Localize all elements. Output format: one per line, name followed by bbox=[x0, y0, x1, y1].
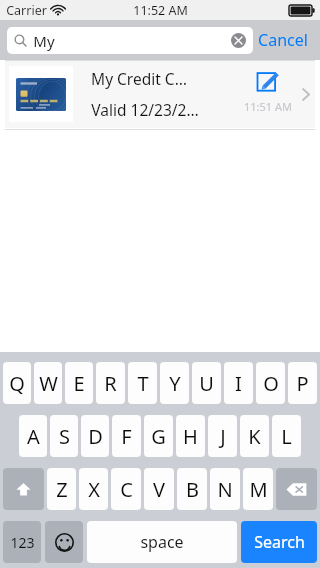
button[interactable]: My bbox=[7, 27, 253, 54]
button[interactable]: L bbox=[272, 415, 301, 457]
button[interactable]: A bbox=[19, 415, 47, 457]
staticText: Y bbox=[169, 370, 181, 397]
staticText: My Credit C… bbox=[91, 68, 187, 89]
button[interactable]: H bbox=[176, 415, 205, 457]
button[interactable]: I bbox=[224, 362, 253, 404]
button[interactable]: Q bbox=[3, 362, 31, 404]
button[interactable]: Edit bbox=[257, 70, 279, 92]
button[interactable]: Y bbox=[160, 362, 189, 404]
button[interactable]: G bbox=[144, 415, 173, 457]
staticText: B bbox=[186, 476, 199, 503]
button[interactable]: C bbox=[111, 468, 141, 510]
button[interactable]: R bbox=[96, 362, 125, 404]
button[interactable]: Cancel bbox=[253, 23, 313, 57]
staticText: 123 bbox=[10, 533, 35, 552]
staticText: A bbox=[27, 423, 40, 450]
button[interactable]: K bbox=[240, 415, 269, 457]
staticText: X bbox=[88, 476, 100, 503]
staticText: My bbox=[33, 31, 55, 51]
staticText: space bbox=[140, 531, 184, 553]
staticText: S bbox=[59, 423, 70, 450]
staticText: L bbox=[281, 423, 292, 450]
button[interactable]: W bbox=[34, 362, 62, 404]
staticText: Carrier bbox=[6, 2, 47, 19]
button[interactable]: M bbox=[243, 468, 273, 510]
button[interactable]: Z bbox=[47, 468, 76, 510]
button[interactable]: F bbox=[112, 415, 141, 457]
staticText: P bbox=[296, 370, 309, 397]
staticText: T bbox=[137, 370, 149, 397]
staticText: Q bbox=[9, 370, 25, 397]
staticText: N bbox=[217, 476, 233, 503]
staticText: R bbox=[104, 370, 117, 397]
staticText: K bbox=[248, 423, 261, 450]
staticText: V bbox=[153, 476, 165, 503]
button[interactable]: Search bbox=[241, 521, 317, 563]
staticText: 11:51 AM bbox=[244, 99, 292, 114]
button[interactable]: T bbox=[128, 362, 157, 404]
button[interactable]: V bbox=[144, 468, 174, 510]
button[interactable]: J bbox=[208, 415, 237, 457]
button[interactable]: B bbox=[177, 468, 207, 510]
button[interactable]: S bbox=[50, 415, 78, 457]
button[interactable]: X bbox=[79, 468, 108, 510]
button[interactable]: Emoji bbox=[45, 521, 83, 563]
button[interactable]: U bbox=[192, 362, 221, 404]
button[interactable]: O bbox=[256, 362, 285, 404]
button[interactable]: E bbox=[65, 362, 93, 404]
staticText: H bbox=[183, 423, 198, 450]
button[interactable]: My Credit C… bbox=[5, 60, 315, 128]
staticText: I bbox=[235, 370, 242, 397]
staticText: Search bbox=[254, 531, 305, 553]
staticText: M bbox=[249, 476, 268, 503]
button[interactable]: Clear text bbox=[231, 33, 246, 48]
staticText: 11:52 AM bbox=[133, 2, 188, 19]
staticText: J bbox=[220, 423, 226, 450]
staticText: Cancel bbox=[258, 29, 308, 51]
staticText: D bbox=[88, 423, 103, 450]
button[interactable]: 123 bbox=[3, 521, 41, 563]
button[interactable]: N bbox=[210, 468, 240, 510]
button[interactable]: Backspace bbox=[276, 468, 317, 510]
staticText: W bbox=[39, 370, 58, 397]
staticText: F bbox=[121, 423, 132, 450]
staticText: E bbox=[73, 370, 85, 397]
button[interactable]: space bbox=[87, 521, 237, 563]
staticText: C bbox=[120, 476, 133, 503]
button[interactable]: D bbox=[81, 415, 109, 457]
staticText: Z bbox=[56, 476, 68, 503]
staticText: O bbox=[263, 370, 279, 397]
staticText: G bbox=[151, 423, 166, 450]
staticText: U bbox=[199, 370, 214, 397]
button[interactable]: P bbox=[288, 362, 317, 404]
button[interactable]: Shift bbox=[3, 468, 44, 510]
staticText: Valid 12/23/2… bbox=[91, 99, 199, 120]
